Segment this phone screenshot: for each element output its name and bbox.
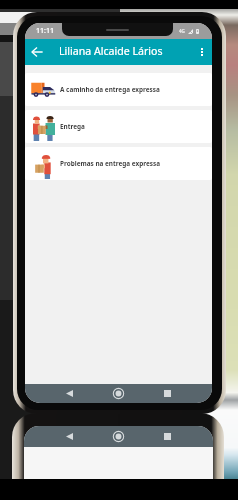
staticText: 4G <box>179 28 185 34</box>
button[interactable]: A caminho da entrega expressa <box>25 73 212 106</box>
staticText: Liliana Alcaide Lários <box>59 44 163 58</box>
staticText: A caminho da entrega expressa <box>60 85 160 94</box>
button[interactable]: Problemas na entrega expressa <box>25 147 212 180</box>
button[interactable]: Back <box>25 39 49 65</box>
button[interactable]: Recent apps <box>158 384 177 403</box>
button[interactable]: Entrega <box>25 110 212 143</box>
button[interactable]: Back <box>60 384 79 403</box>
staticText: Entrega <box>60 122 85 131</box>
button[interactable]: Home <box>109 384 128 403</box>
button[interactable]: More options <box>192 39 212 65</box>
staticText: 11:11 <box>36 26 54 36</box>
staticText: Problemas na entrega expressa <box>60 159 161 168</box>
